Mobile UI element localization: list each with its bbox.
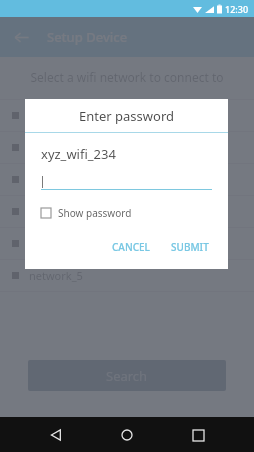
button[interactable]: SUBMIT xyxy=(165,236,215,258)
button[interactable]: network_0 xyxy=(0,100,254,131)
staticText: Setup Device xyxy=(47,28,128,46)
staticText: Select a wifi network to connect to xyxy=(0,69,254,85)
button[interactable]: network_5 xyxy=(0,260,254,291)
staticText: xyz_wifi_234 xyxy=(41,145,116,163)
button[interactable]: Back xyxy=(41,420,71,450)
staticText: network_3 xyxy=(29,204,83,219)
staticText: Search xyxy=(106,367,148,385)
button[interactable]: network_1 xyxy=(0,132,254,163)
staticText: network_0 xyxy=(29,108,83,123)
staticText: network_2 xyxy=(29,172,83,187)
button[interactable] xyxy=(41,174,212,190)
staticText: Show password xyxy=(58,206,132,220)
button[interactable]: Recent apps xyxy=(183,420,213,450)
button[interactable]: Back xyxy=(8,24,34,50)
button[interactable]: network_4 xyxy=(0,228,254,259)
staticText: Enter password xyxy=(25,107,228,125)
staticText: 12:30 xyxy=(225,3,249,15)
staticText: SUBMIT xyxy=(171,240,209,254)
button[interactable]: network_3 xyxy=(0,196,254,227)
staticText: network_5 xyxy=(29,268,83,283)
staticText: CANCEL xyxy=(112,240,150,254)
button[interactable]: Home xyxy=(112,420,142,450)
button[interactable]: CANCEL xyxy=(106,236,156,258)
button[interactable]: Show password xyxy=(41,206,132,220)
button[interactable]: network_2 xyxy=(0,164,254,195)
staticText: network_1 xyxy=(29,140,83,155)
